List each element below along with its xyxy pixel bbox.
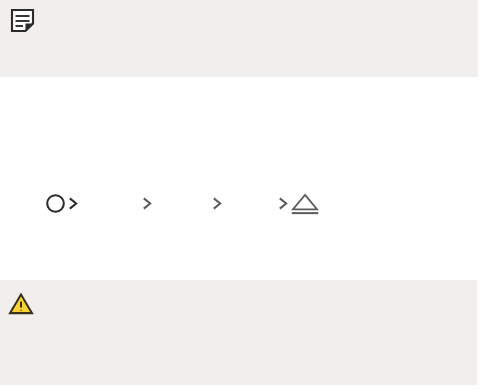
button[interactable]: Note — [10, 8, 35, 33]
button[interactable]: Eject — [290, 192, 320, 216]
button[interactable]: Warning — [9, 292, 33, 316]
button[interactable]: Warning — [0, 280, 477, 385]
button[interactable]: Note — [0, 0, 478, 77]
button[interactable]: Power — [46, 194, 65, 213]
